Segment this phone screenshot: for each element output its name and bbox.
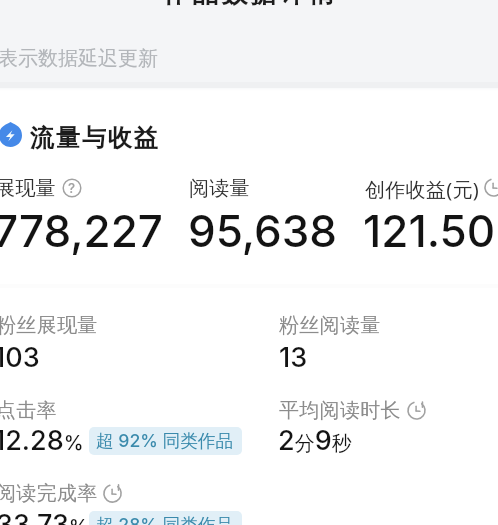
staticText: ? bbox=[68, 180, 76, 196]
staticText: 95,638 bbox=[188, 204, 337, 257]
staticText: 平均阅读时长 bbox=[279, 398, 401, 423]
staticText: 778,227 bbox=[0, 204, 163, 257]
staticText: 12.28% bbox=[0, 424, 84, 457]
staticText: 表示数据延迟更新 bbox=[0, 46, 158, 71]
button[interactable] bbox=[0, 473, 245, 525]
staticText: 作品数据详情 bbox=[163, 0, 339, 10]
button[interactable]: 数据延迟更新说明 bbox=[405, 399, 428, 422]
staticText: 2分9秒 bbox=[278, 424, 352, 457]
button[interactable]: 超 92% 同类作品 bbox=[89, 427, 242, 455]
staticText: 点击率 bbox=[0, 398, 57, 423]
staticText: 33.73% bbox=[0, 508, 89, 525]
staticText: 粉丝阅读量 bbox=[279, 313, 381, 338]
button[interactable]: 流量与收益 bbox=[30, 120, 162, 150]
staticText: 展现量 bbox=[0, 176, 56, 201]
staticText: 阅读量 bbox=[189, 176, 250, 201]
button[interactable] bbox=[261, 306, 498, 378]
button[interactable]: 数据延迟更新说明 bbox=[101, 482, 124, 505]
button[interactable]: 超 28% 同类作品 bbox=[89, 511, 242, 525]
button[interactable] bbox=[182, 170, 358, 258]
button[interactable] bbox=[0, 306, 245, 378]
staticText: 超 28% 同类作品 bbox=[96, 512, 234, 525]
staticText: 流量与收益 bbox=[30, 123, 160, 153]
button[interactable] bbox=[261, 390, 498, 462]
staticText: 超 92% 同类作品 bbox=[96, 428, 234, 452]
button[interactable] bbox=[0, 390, 245, 462]
button[interactable]: 指标说明 bbox=[60, 176, 84, 200]
staticText: 121.50 bbox=[363, 204, 496, 257]
staticText: 创作收益(元) bbox=[365, 176, 480, 203]
staticText: 粉丝展现量 bbox=[0, 313, 98, 338]
button[interactable] bbox=[358, 170, 498, 258]
button[interactable] bbox=[0, 170, 180, 258]
staticText: 103 bbox=[0, 341, 40, 374]
staticText: 13 bbox=[279, 341, 308, 374]
staticText: 阅读完成率 bbox=[0, 481, 98, 506]
other: 流量与收益 bbox=[0, 122, 22, 147]
button[interactable]: 数据延迟更新说明 bbox=[482, 176, 498, 199]
